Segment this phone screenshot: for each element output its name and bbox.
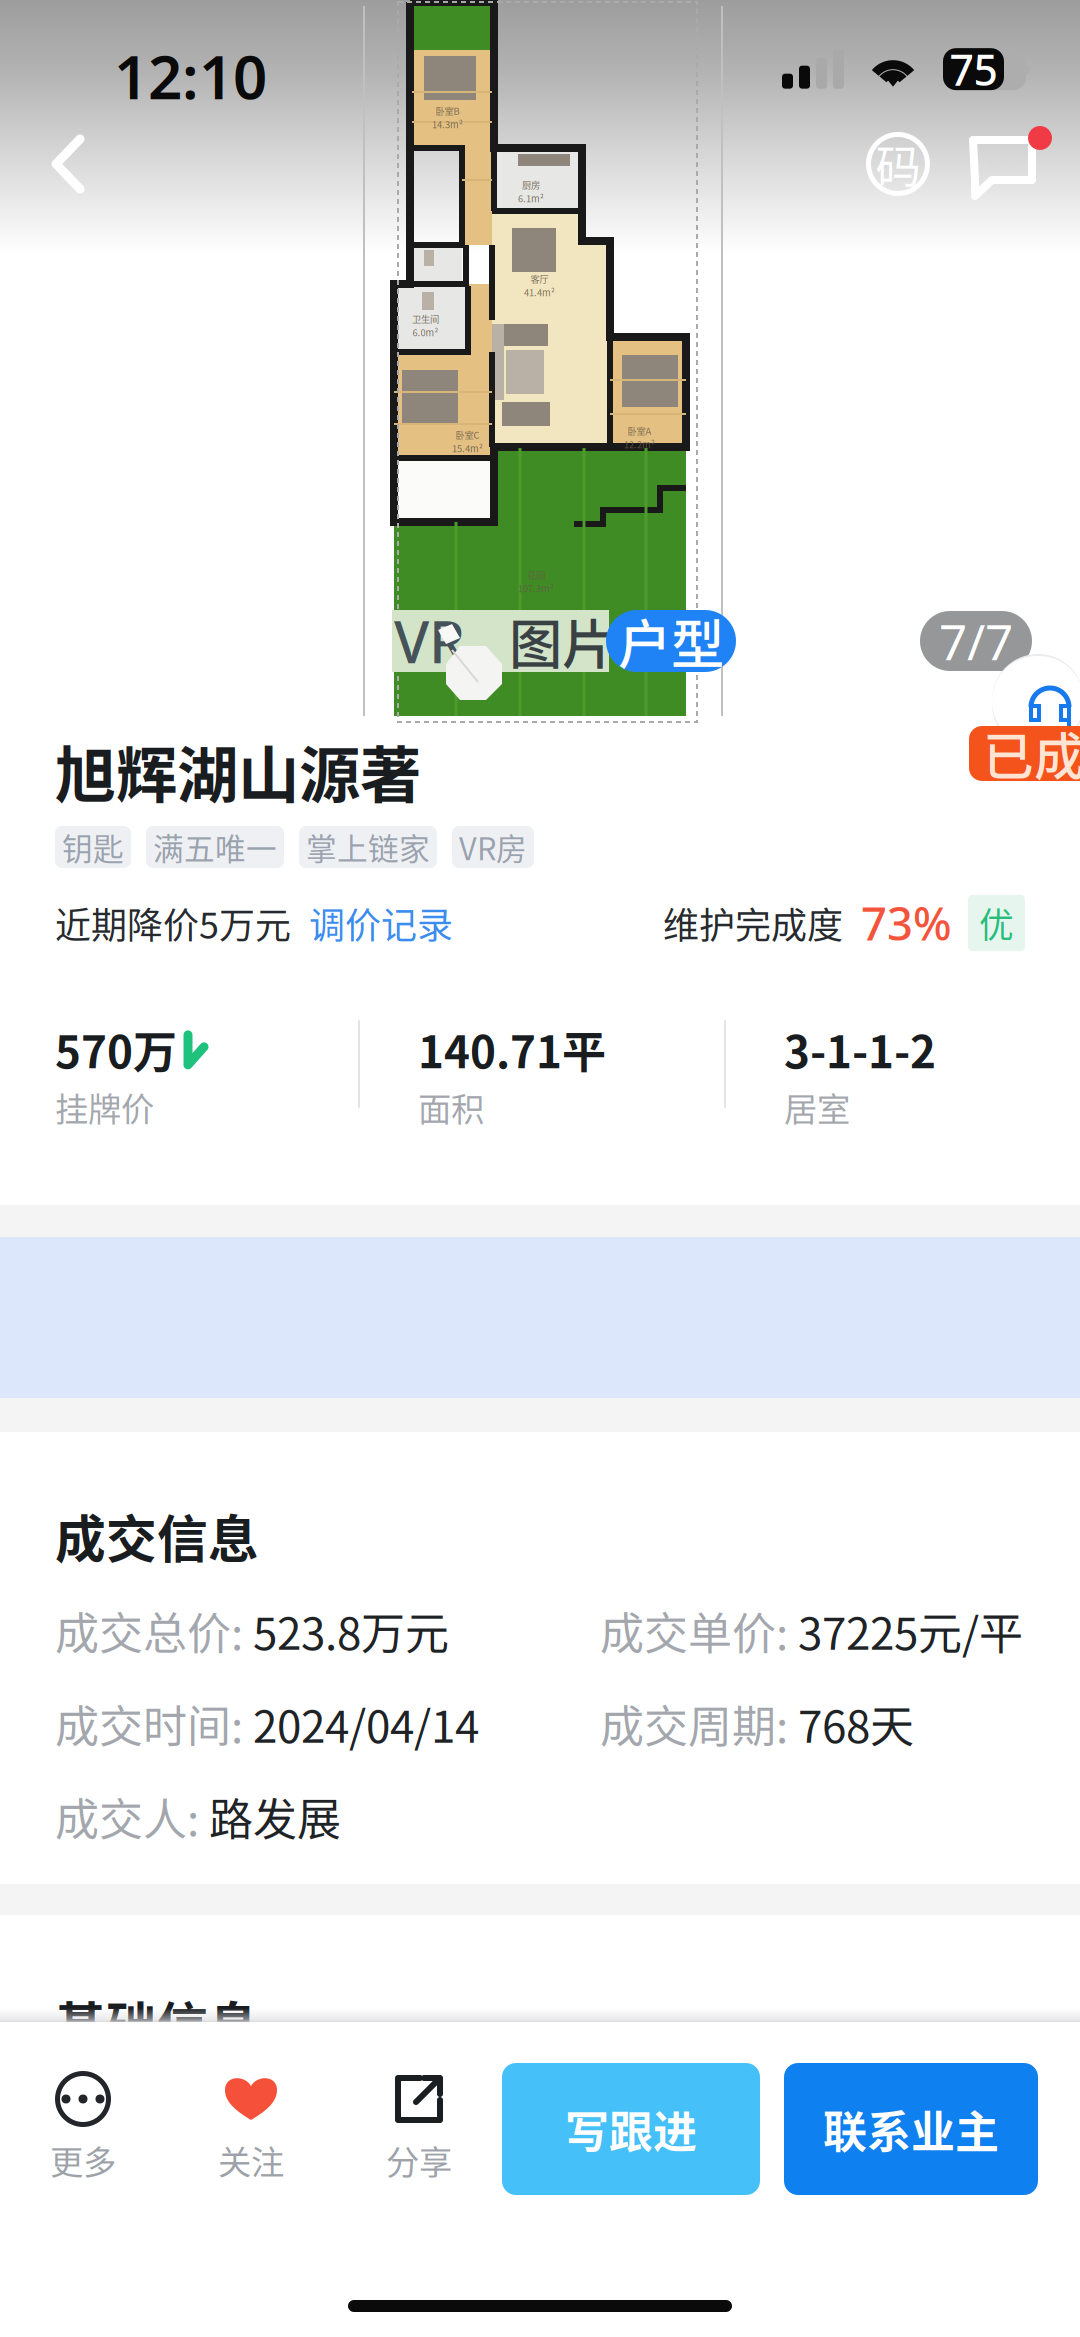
button[interactable]: 关注 [198,2063,304,2181]
staticText: 基础信息 [55,1986,259,2060]
staticText: 14.3m² [432,117,463,131]
staticText: 7/7 [939,608,1013,674]
staticText: 成交时间: [55,1692,253,1755]
button[interactable]: Back [0,125,114,203]
staticText: 6.0m² [412,325,438,339]
staticText: 成交周期: [600,1692,798,1755]
staticText: 更多 [50,2136,116,2184]
staticText: 768天 [798,1692,914,1755]
staticText: 523.8万元 [253,1599,449,1662]
button[interactable]: 分享 [366,2063,472,2181]
staticText: 15.4m² [452,441,483,455]
staticText: 分享 [386,2136,452,2184]
staticText: 已成交 [983,717,1080,790]
staticText: 140.71平 [418,1017,606,1081]
button[interactable]: VR [394,610,465,672]
staticText: 挂牌价 [55,1083,154,1131]
staticText: 41.4m² [524,285,555,299]
staticText: 卫生间 [412,312,439,325]
button[interactable]: Scan code [856,122,940,206]
staticText: 成交总价: [55,1599,253,1662]
staticText: VR [394,603,465,679]
button[interactable]: Messages [962,121,1058,207]
staticText: 卧室B [435,104,459,117]
button[interactable]: Customer service [992,654,1080,750]
staticText: 73% [861,893,952,953]
staticText: 12.2m² [624,437,655,451]
staticText: 掌上链家 [306,825,430,869]
staticText: 图片 [509,602,615,680]
staticText: 满五唯一 [153,825,277,869]
staticText: 居室 [784,1083,850,1131]
staticText: 成交单价: [600,1599,798,1662]
button[interactable]: 调价记录 [291,897,453,949]
staticText: 面积 [418,1083,484,1131]
staticText: 联系业主 [823,2097,999,2161]
staticText: 成交人: [55,1785,209,1848]
staticText: 107.3m² [518,581,554,595]
staticText: 旭辉湖山源著 [55,727,421,815]
staticText: 花园 [527,568,545,581]
staticText: 钥匙 [62,825,124,869]
button[interactable]: 写跟进 [502,2063,760,2195]
button[interactable]: 户型 [606,610,736,672]
staticText: VR房 [459,825,527,869]
staticText: 570万 [55,1017,177,1081]
staticText: 优 [979,898,1014,948]
button[interactable]: 联系业主 [784,2063,1038,2195]
staticText: 75 [949,41,997,97]
staticText: 路发展 [209,1785,341,1848]
staticText: 12:10 [114,36,267,116]
staticText: 客厅 [530,272,548,285]
staticText: 维护完成度 [663,897,843,949]
staticText: 37225元/平 [798,1599,1023,1662]
staticText: 2024/04/14 [253,1692,479,1755]
staticText: 码 [875,131,920,197]
staticText: 调价记录 [309,897,453,949]
staticText: 卧室A [627,424,651,437]
button[interactable]: 更多 [30,2063,136,2181]
staticText: 6.1m² [518,191,544,205]
staticText: 户型 [618,602,724,680]
staticText: 近期降价5万元 [55,897,291,949]
staticText: 关注 [218,2136,284,2184]
staticText: 厨房 [522,178,540,191]
button[interactable]: 图片 [509,610,615,672]
staticText: 卧室C [455,428,479,441]
staticText: 3-1-1-2 [784,1017,936,1081]
staticText: 成交信息 [55,1499,259,1573]
staticText: 写跟进 [565,2097,697,2161]
